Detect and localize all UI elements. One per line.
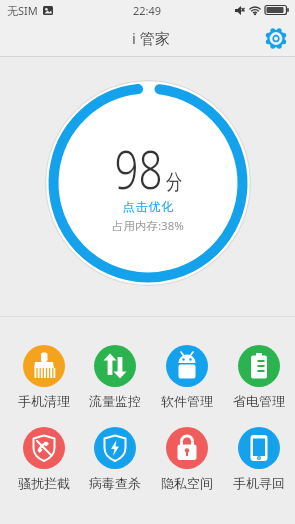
staticText: 手机清理 [18,393,70,409]
staticText: 无SIM [7,3,38,18]
staticText: 隐私空间 [161,475,213,491]
staticText: 省电管理 [233,393,285,409]
button[interactable]: 软件管理 [151,345,223,409]
staticText: 流量监控 [89,393,141,409]
button[interactable]: 病毒查杀 [79,427,151,491]
staticText: 手机寻回 [233,475,285,491]
button[interactable]: 骚扰拦截 [8,427,79,491]
staticText: i 管家 [132,28,170,48]
button[interactable] [264,26,288,50]
button[interactable]: 省电管理 [223,345,295,409]
button[interactable]: 流量监控 [79,345,151,409]
staticText: 分 [166,169,182,195]
staticText: 软件管理 [161,393,213,409]
staticText: 98 [115,131,163,205]
button[interactable]: 点击优化 [122,199,174,214]
button[interactable]: 98 [45,80,251,286]
button[interactable]: 隐私空间 [151,427,223,491]
staticText: 22:49 [133,3,162,18]
staticText: 点击优化 [122,199,174,214]
button[interactable]: 手机寻回 [223,427,295,491]
staticText: 骚扰拦截 [18,475,70,491]
staticText: 病毒查杀 [89,475,141,491]
staticText: 占用内存:38% [112,218,184,234]
button[interactable]: 手机清理 [8,345,79,409]
